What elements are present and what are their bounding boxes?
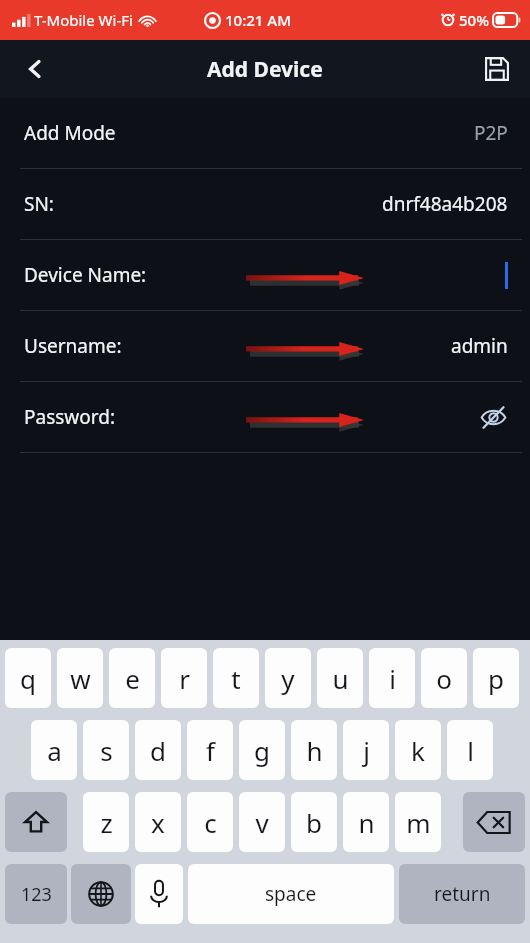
staticText: T-Mobile Wi-Fi (34, 10, 133, 30)
button[interactable]: Show password (478, 402, 508, 432)
staticText: space (265, 881, 317, 907)
staticText: return (434, 881, 491, 907)
staticText: Device Name: (24, 262, 147, 288)
button[interactable]: i (369, 648, 415, 708)
button[interactable]: Device Name: (0, 240, 530, 310)
button[interactable]: Shift (5, 792, 67, 852)
staticText: i (389, 661, 396, 696)
staticText: 10:21 AM (225, 10, 291, 30)
staticText: Add Device (207, 55, 323, 84)
button[interactable]: r (161, 648, 207, 708)
staticText: 50% (459, 10, 489, 30)
staticText: m (406, 805, 431, 840)
button[interactable]: SN: (0, 169, 530, 239)
button[interactable]: 123 (5, 864, 67, 924)
button[interactable]: Password: (0, 382, 530, 452)
button[interactable]: b (291, 792, 337, 852)
staticText: k (411, 733, 425, 768)
button[interactable]: c (187, 792, 233, 852)
staticText: Add Mode (24, 120, 116, 146)
staticText: admin (451, 333, 508, 359)
button[interactable]: space (188, 864, 394, 924)
staticText: p (488, 661, 504, 696)
staticText: v (255, 805, 269, 840)
staticText: h (306, 733, 323, 768)
button[interactable]: Backspace (463, 792, 525, 852)
staticText: g (254, 733, 270, 768)
staticText: Username: (24, 333, 122, 359)
button[interactable]: n (343, 792, 389, 852)
button[interactable]: x (135, 792, 181, 852)
staticText: b (306, 805, 322, 840)
staticText: u (332, 661, 349, 696)
button[interactable]: f (187, 720, 233, 780)
button[interactable]: j (343, 720, 389, 780)
button[interactable]: k (395, 720, 441, 780)
button[interactable]: Voice input (135, 864, 183, 924)
button[interactable]: e (109, 648, 155, 708)
button[interactable]: p (473, 648, 519, 708)
button[interactable]: h (291, 720, 337, 780)
staticText: n (358, 805, 375, 840)
button[interactable]: v (239, 792, 285, 852)
staticText: d (150, 733, 166, 768)
button[interactable]: l (447, 720, 493, 780)
button[interactable]: Change keyboard language (71, 864, 131, 924)
staticText: 123 (21, 882, 52, 907)
staticText: o (436, 661, 452, 696)
staticText: l (467, 733, 474, 768)
button[interactable]: u (317, 648, 363, 708)
button[interactable]: return (399, 864, 525, 924)
staticText: w (70, 661, 91, 696)
staticText: x (151, 805, 165, 840)
staticText: dnrf48a4b208 (382, 191, 508, 217)
button[interactable]: m (395, 792, 441, 852)
button[interactable]: q (5, 648, 51, 708)
staticText: e (125, 661, 140, 696)
staticText: Password: (24, 404, 116, 430)
button[interactable]: Username: (0, 311, 530, 381)
button[interactable]: Back (0, 40, 70, 98)
button[interactable]: Add Mode (0, 98, 530, 168)
staticText: s (100, 733, 113, 768)
staticText: y (281, 661, 295, 696)
button[interactable]: d (135, 720, 181, 780)
staticText: c (204, 805, 217, 840)
staticText: q (20, 661, 36, 696)
button[interactable]: y (265, 648, 311, 708)
staticText: f (206, 733, 215, 768)
button[interactable]: z (83, 792, 129, 852)
staticText: t (231, 661, 241, 696)
staticText: SN: (24, 191, 54, 217)
button[interactable]: a (31, 720, 77, 780)
staticText: z (100, 805, 113, 840)
button[interactable]: Save (464, 40, 530, 98)
button[interactable]: w (57, 648, 103, 708)
button[interactable]: t (213, 648, 259, 708)
staticText: j (363, 733, 370, 768)
button[interactable]: g (239, 720, 285, 780)
staticText: P2P (474, 120, 508, 146)
staticText: r (179, 661, 190, 696)
button[interactable]: s (83, 720, 129, 780)
button[interactable]: o (421, 648, 467, 708)
staticText: a (47, 733, 62, 768)
